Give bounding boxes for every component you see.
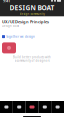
staticText: design community xyxy=(19,12,44,16)
staticText: Together we design xyxy=(6,35,35,38)
button[interactable]: Profile xyxy=(51,101,64,113)
button[interactable]: Together we design xyxy=(0,35,35,38)
staticText: 9:41 xyxy=(3,0,10,3)
button[interactable]: Home xyxy=(0,101,13,113)
button[interactable]: Explore xyxy=(13,101,26,113)
staticText: Design Boat xyxy=(2,24,19,28)
staticText: UX/UI Design Principles xyxy=(2,19,49,24)
staticText: a community of designers xyxy=(14,59,49,62)
button[interactable]: Notifications xyxy=(38,101,51,113)
staticText: Build better products with xyxy=(13,55,51,59)
button[interactable]: Course video xyxy=(2,42,16,53)
button[interactable]: Messages xyxy=(26,101,38,113)
staticText: DESIGN BOAT xyxy=(9,3,54,12)
